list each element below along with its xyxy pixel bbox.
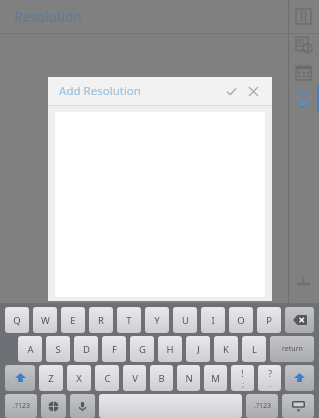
staticText: Z bbox=[48, 372, 54, 385]
staticText: T bbox=[126, 314, 132, 327]
button[interactable]: Hide keyboard bbox=[282, 394, 314, 418]
staticText: .?123 bbox=[13, 401, 30, 411]
button[interactable]: E bbox=[61, 307, 85, 333]
button[interactable]: B bbox=[150, 365, 173, 391]
staticText: ! bbox=[241, 368, 244, 380]
button[interactable]: Shift bbox=[5, 365, 35, 391]
button[interactable]: Recent documents bbox=[295, 36, 312, 53]
staticText: N bbox=[185, 372, 193, 385]
button[interactable]: I bbox=[201, 307, 225, 333]
button[interactable]: J bbox=[186, 336, 210, 362]
button[interactable]: K bbox=[214, 336, 238, 362]
staticText: X bbox=[76, 372, 82, 385]
button[interactable]: Shift bbox=[285, 365, 314, 391]
button[interactable]: Dictate bbox=[70, 394, 95, 418]
staticText: B bbox=[158, 372, 165, 385]
button[interactable]: L bbox=[242, 336, 266, 362]
button[interactable]: C bbox=[95, 365, 119, 391]
staticText: E bbox=[70, 314, 76, 327]
button[interactable]: Y bbox=[145, 307, 169, 333]
staticText: J bbox=[197, 343, 200, 356]
staticText: . bbox=[269, 380, 271, 389]
button[interactable]: Z bbox=[39, 365, 63, 391]
staticText: P bbox=[266, 314, 272, 327]
staticText: U bbox=[182, 314, 189, 327]
button[interactable]: G bbox=[130, 336, 154, 362]
staticText: W bbox=[41, 314, 50, 327]
staticText: K bbox=[223, 343, 229, 356]
button[interactable]: W bbox=[33, 307, 57, 333]
button[interactable]: Calendar bbox=[295, 64, 312, 81]
button[interactable]: P bbox=[257, 307, 281, 333]
button[interactable]: Close bbox=[245, 83, 262, 100]
button[interactable]: V bbox=[123, 365, 146, 391]
button[interactable]: T bbox=[117, 307, 141, 333]
button[interactable]: Emoji bbox=[41, 394, 66, 418]
button[interactable]: Tips bbox=[295, 91, 312, 108]
button[interactable]: F bbox=[102, 336, 126, 362]
staticText: H bbox=[166, 343, 174, 356]
staticText: ; bbox=[242, 380, 244, 389]
staticText: O bbox=[237, 314, 245, 327]
staticText: ? bbox=[268, 368, 272, 380]
staticText: I bbox=[211, 314, 215, 327]
button[interactable]: O bbox=[229, 307, 253, 333]
staticText: Q bbox=[13, 314, 21, 327]
button[interactable]: D bbox=[74, 336, 98, 362]
staticText: F bbox=[112, 343, 117, 356]
button[interactable]: Columns bbox=[295, 8, 312, 25]
staticText: C bbox=[104, 372, 111, 385]
button[interactable]: Confirm bbox=[223, 83, 240, 100]
staticText: Add Resolution bbox=[59, 83, 141, 99]
staticText: R bbox=[98, 314, 104, 327]
staticText: G bbox=[139, 343, 146, 356]
button[interactable]: .?123 bbox=[5, 394, 37, 418]
button[interactable]: return bbox=[270, 336, 314, 362]
button[interactable]: Space bbox=[99, 394, 242, 418]
staticText: Resolution bbox=[14, 8, 82, 26]
button[interactable]: M bbox=[204, 365, 227, 391]
staticText: .?123 bbox=[254, 401, 271, 411]
button[interactable]: Resolution bbox=[0, 0, 319, 33]
staticText: S bbox=[55, 343, 61, 356]
staticText: Y bbox=[154, 314, 160, 327]
staticText: V bbox=[132, 372, 138, 385]
button[interactable]: X bbox=[67, 365, 91, 391]
staticText: M bbox=[211, 372, 220, 385]
button[interactable]: S bbox=[46, 336, 70, 362]
button[interactable]: N bbox=[177, 365, 200, 391]
button[interactable]: R bbox=[89, 307, 113, 333]
staticText: A bbox=[27, 343, 34, 356]
button[interactable]: Q bbox=[5, 307, 29, 333]
button[interactable]: A bbox=[18, 336, 42, 362]
button[interactable]: H bbox=[158, 336, 182, 362]
staticText: L bbox=[252, 343, 257, 356]
button[interactable]: ? bbox=[258, 365, 281, 391]
button[interactable]: U bbox=[173, 307, 197, 333]
button[interactable]: .?123 bbox=[246, 394, 278, 418]
button[interactable]: ! bbox=[231, 365, 254, 391]
staticText: D bbox=[83, 343, 90, 356]
staticText: return bbox=[282, 344, 303, 354]
button[interactable]: Backspace bbox=[285, 307, 314, 333]
